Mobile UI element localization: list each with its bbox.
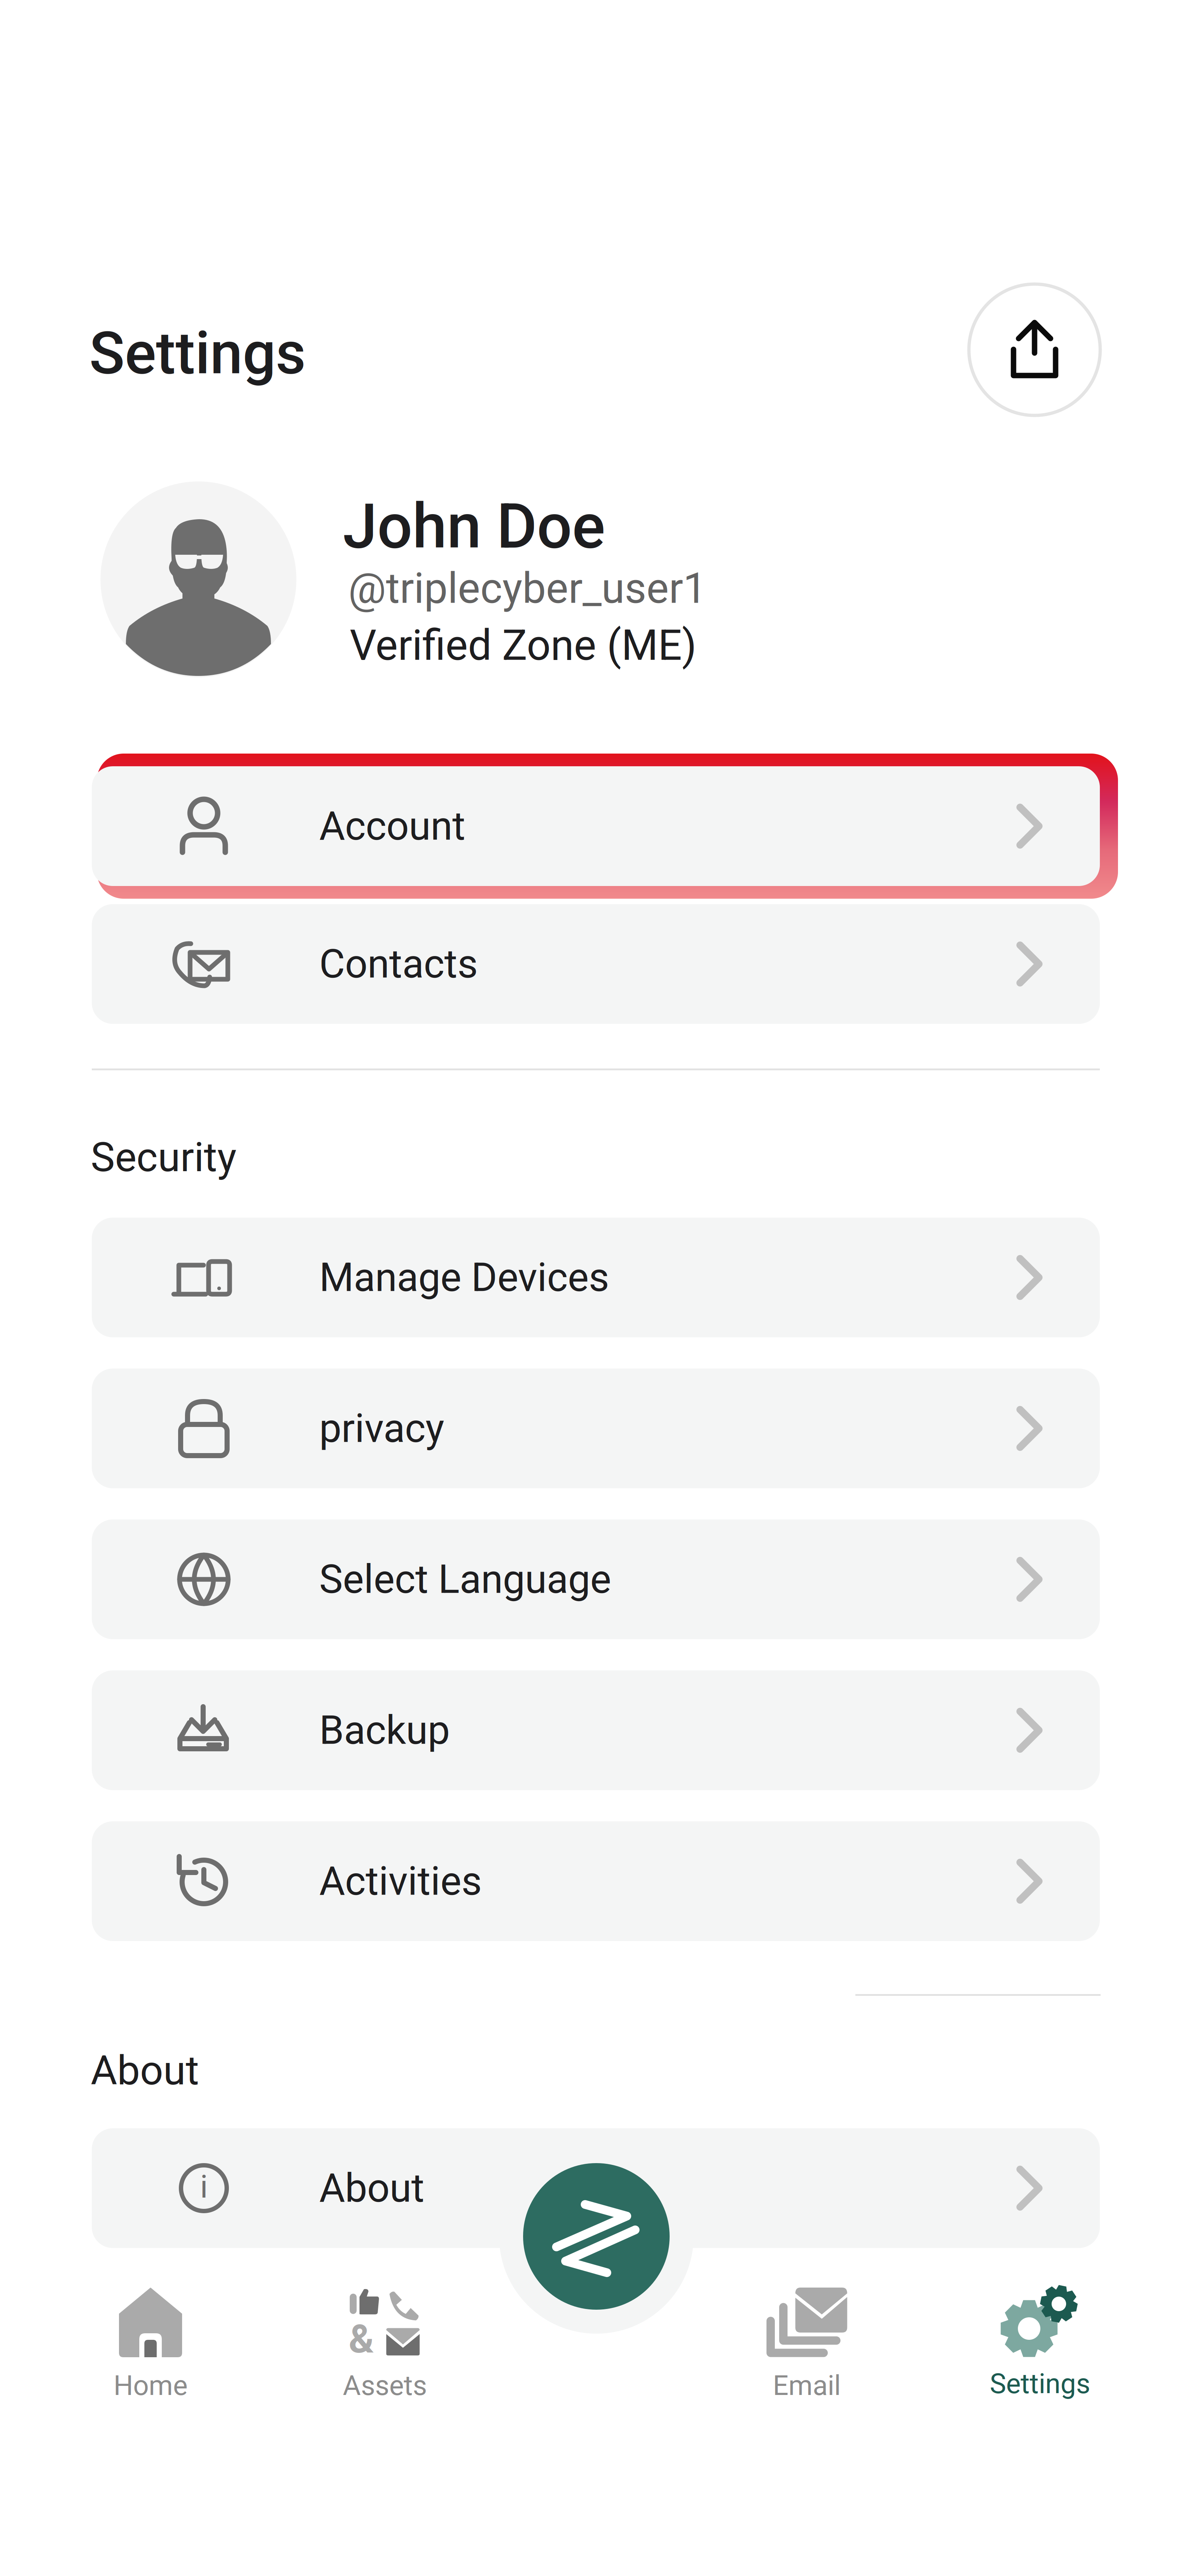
staticText: Activities xyxy=(319,1858,482,1904)
staticText: Contacts xyxy=(319,941,478,987)
button[interactable]: Select Language xyxy=(92,1519,1100,1639)
staticText: Home xyxy=(114,2369,188,2402)
staticText: Settings xyxy=(990,2368,1090,2400)
button[interactable]: Settings xyxy=(938,2285,1142,2405)
button[interactable]: New message xyxy=(523,2163,670,2310)
button[interactable]: privacy xyxy=(92,1369,1100,1488)
button[interactable]: Share xyxy=(967,282,1102,417)
staticText: Account xyxy=(319,803,465,849)
button[interactable]: Email xyxy=(705,2287,908,2407)
button[interactable]: i xyxy=(92,2128,1100,2248)
staticText: Verified Zone (ME) xyxy=(350,621,696,670)
staticText: privacy xyxy=(319,1405,444,1452)
staticText: & xyxy=(349,2317,374,2362)
button[interactable]: Backup xyxy=(92,1670,1100,1790)
staticText: @triplecyber_user1 xyxy=(348,564,707,613)
button[interactable]: Account xyxy=(92,766,1100,886)
staticText: Security xyxy=(91,1133,237,1181)
button[interactable]: Home xyxy=(49,2287,252,2407)
staticText: About xyxy=(319,2165,424,2211)
button[interactable]: Manage Devices xyxy=(92,1218,1100,1337)
staticText: About xyxy=(91,2047,199,2094)
staticText: John Doe xyxy=(343,490,605,563)
staticText: Backup xyxy=(319,1707,450,1753)
button[interactable]: Contacts xyxy=(92,904,1100,1024)
staticText: Assets xyxy=(343,2369,427,2402)
staticText: Email xyxy=(773,2369,841,2402)
button[interactable]: & xyxy=(283,2287,486,2407)
staticText: i xyxy=(200,2168,208,2205)
staticText: Select Language xyxy=(319,1556,611,1603)
staticText: Settings xyxy=(89,319,306,388)
button[interactable]: Activities xyxy=(92,1821,1100,1941)
staticText: Manage Devices xyxy=(319,1254,609,1301)
